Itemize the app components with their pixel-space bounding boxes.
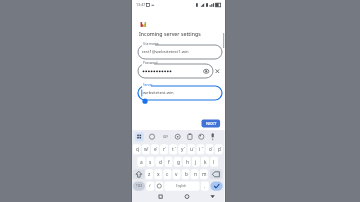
staticText: u xyxy=(190,146,193,153)
staticText: f xyxy=(168,159,170,166)
staticText: websitetest.win xyxy=(143,90,174,96)
staticText: j xyxy=(195,159,197,166)
staticText: / xyxy=(149,183,151,189)
staticText: English xyxy=(176,184,187,188)
staticText: n xyxy=(194,171,197,178)
staticText: 6 xyxy=(184,145,186,148)
staticText: t xyxy=(172,146,174,153)
staticText: 9 xyxy=(211,145,213,148)
staticText: l xyxy=(213,159,215,166)
staticText: r xyxy=(163,146,165,153)
staticText: Password xyxy=(143,61,158,65)
staticText: q xyxy=(136,146,139,153)
staticText: Server xyxy=(143,83,153,87)
staticText: 4 xyxy=(165,145,167,148)
staticText: test1@websitetest1.win xyxy=(142,49,189,55)
staticText: 3 xyxy=(156,145,158,148)
staticText: p xyxy=(218,146,221,153)
staticText: 7 xyxy=(193,145,195,148)
staticText: 5 xyxy=(175,145,177,148)
staticText: ?123 xyxy=(136,184,143,188)
staticText: v xyxy=(175,171,178,178)
staticText: y xyxy=(181,146,184,153)
staticText: m xyxy=(202,171,207,178)
staticText: 8 xyxy=(202,145,204,148)
staticText: GIF xyxy=(163,135,169,139)
staticText: 13:47 xyxy=(136,2,146,7)
staticText: k xyxy=(204,159,207,166)
staticText: Username xyxy=(143,42,159,46)
staticText: h xyxy=(186,159,189,166)
staticText: d xyxy=(159,159,162,166)
staticText: e xyxy=(154,146,157,153)
staticText: z xyxy=(148,171,151,178)
staticText: Incoming server settings xyxy=(139,30,201,37)
staticText: o xyxy=(209,146,212,153)
staticText: a xyxy=(140,159,143,166)
staticText: c xyxy=(166,171,169,178)
staticText: b xyxy=(185,171,188,178)
staticText: s xyxy=(149,159,152,166)
staticText: . xyxy=(204,183,206,189)
staticText: g xyxy=(177,159,180,166)
staticText: NEXT xyxy=(206,121,217,127)
staticText: i xyxy=(199,146,201,153)
staticText: 1 xyxy=(138,145,140,148)
staticText: x xyxy=(157,171,160,178)
staticText: 2 xyxy=(147,145,149,148)
staticText: w xyxy=(144,146,148,153)
staticText: 0 xyxy=(220,145,222,148)
